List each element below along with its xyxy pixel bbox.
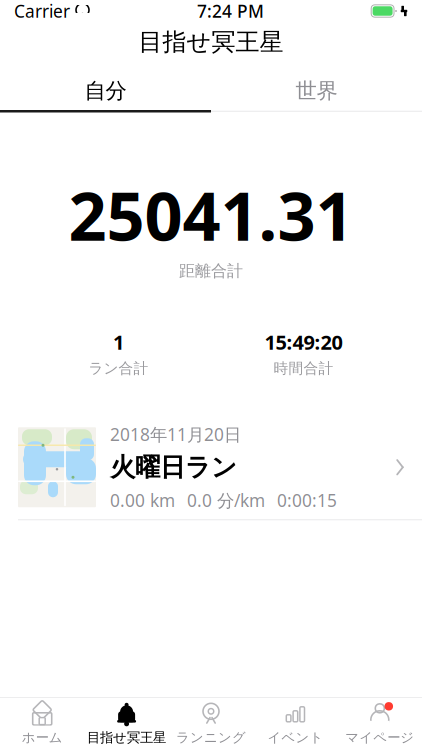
staticText: 距離合計	[179, 261, 243, 281]
button[interactable]: 目指せ冥王星	[84, 699, 169, 749]
staticText: 2018年11月20日	[110, 423, 241, 446]
button[interactable]: イベント	[253, 699, 338, 749]
staticText: マイページ	[345, 729, 414, 746]
staticText: Carrier	[14, 0, 70, 22]
staticText: 自分	[84, 78, 126, 104]
staticText: ホーム	[22, 729, 63, 746]
staticText: 火曜日ラン	[110, 452, 237, 483]
staticText: 7:24 PM	[197, 0, 264, 22]
staticText: ラン合計	[88, 359, 148, 377]
staticText: ランニング	[176, 729, 246, 746]
button[interactable]: 2018年11月20日	[0, 415, 422, 520]
staticText: 0.0 分/km	[187, 489, 265, 512]
staticText: 0.00 km	[110, 489, 175, 512]
staticText: 1	[113, 329, 124, 355]
button[interactable]: ホーム	[0, 699, 84, 749]
staticText: 0:00:15	[277, 489, 337, 512]
staticText: 25041.31	[68, 170, 353, 259]
staticText: 目指せ冥王星	[138, 27, 283, 57]
staticText: 目指せ冥王星	[87, 729, 166, 746]
staticText: 15:49:20	[264, 329, 342, 355]
button[interactable]: ランニング	[169, 699, 253, 749]
staticText: イベント	[267, 729, 323, 746]
button[interactable]: マイページ	[338, 699, 422, 749]
staticText: 時間合計	[273, 359, 333, 377]
staticText: 世界	[295, 78, 337, 104]
button[interactable]: 自分	[0, 72, 211, 110]
button[interactable]: 世界	[211, 72, 422, 110]
